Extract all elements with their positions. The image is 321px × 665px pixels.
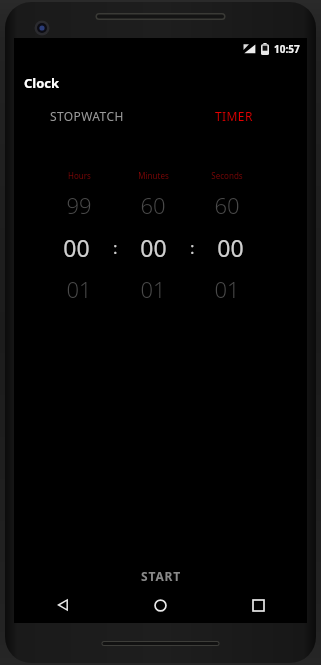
button[interactable]: Back xyxy=(14,588,111,622)
staticText: 00 xyxy=(217,232,244,263)
button[interactable]: START xyxy=(119,562,203,590)
button[interactable]: 01 xyxy=(190,274,264,304)
button[interactable]: 99 xyxy=(42,190,116,220)
staticText: : xyxy=(190,236,195,259)
staticText: 60 xyxy=(214,190,240,220)
button[interactable]: 60 xyxy=(190,190,264,220)
button[interactable]: 60 xyxy=(116,190,190,220)
staticText: 00 xyxy=(63,232,90,263)
button[interactable]: Home xyxy=(111,588,209,622)
staticText: START xyxy=(141,568,181,584)
button[interactable]: 00 xyxy=(42,232,110,263)
button[interactable]: 00 xyxy=(197,232,264,263)
staticText: Minutes xyxy=(138,170,169,181)
button[interactable]: TIMER xyxy=(160,108,307,124)
staticText: 01 xyxy=(140,274,166,304)
staticText: 10:57 xyxy=(274,42,300,56)
button[interactable]: 01 xyxy=(42,274,116,304)
staticText: 01 xyxy=(66,274,92,304)
button[interactable]: STOPWATCH xyxy=(14,108,160,124)
staticText: Seconds xyxy=(211,170,243,181)
staticText: 01 xyxy=(214,274,240,304)
staticText: : xyxy=(113,236,118,259)
staticText: Hours xyxy=(68,170,91,181)
staticText: 00 xyxy=(140,232,167,263)
staticText: TIMER xyxy=(215,108,253,124)
button[interactable]: 00 xyxy=(120,232,187,263)
staticText: Clock xyxy=(24,74,60,92)
staticText: STOPWATCH xyxy=(50,108,124,124)
button[interactable]: 01 xyxy=(116,274,190,304)
staticText: 60 xyxy=(140,190,166,220)
staticText: 99 xyxy=(66,190,92,220)
button[interactable]: Recent apps xyxy=(209,588,307,622)
